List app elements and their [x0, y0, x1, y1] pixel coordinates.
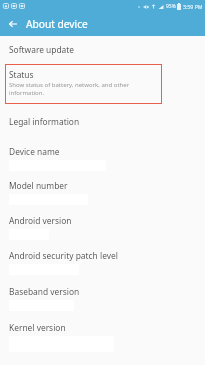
staticText: 3:59 PM — [183, 3, 203, 10]
button[interactable]: Software update — [0, 44, 205, 64]
staticText: Legal information — [9, 116, 80, 127]
button[interactable]: Legal information — [0, 116, 205, 136]
staticText: Status — [9, 69, 34, 80]
button[interactable]: Baseband version — [0, 286, 205, 316]
staticText: Model number — [9, 180, 68, 191]
button[interactable]: Model number — [0, 180, 205, 210]
staticText: Baseband version — [9, 286, 80, 297]
staticText: Android security patch level — [9, 250, 118, 261]
staticText: Software update — [9, 44, 75, 55]
staticText: 95% — [166, 3, 176, 10]
button[interactable]: Android version — [0, 215, 205, 245]
staticText: Android version — [9, 215, 72, 226]
button[interactable]: Kernel version — [0, 322, 205, 352]
button[interactable]: Navigate up — [5, 16, 21, 32]
button[interactable]: Android security patch level — [0, 250, 205, 280]
staticText: Device name — [9, 146, 60, 157]
staticText: About device — [26, 17, 88, 31]
button[interactable]: Device name — [0, 146, 205, 176]
staticText: Kernel version — [9, 322, 66, 333]
staticText: Show status of battery, network, and oth… — [9, 81, 130, 89]
staticText: information. — [9, 89, 45, 97]
button[interactable]: Status — [0, 66, 205, 102]
